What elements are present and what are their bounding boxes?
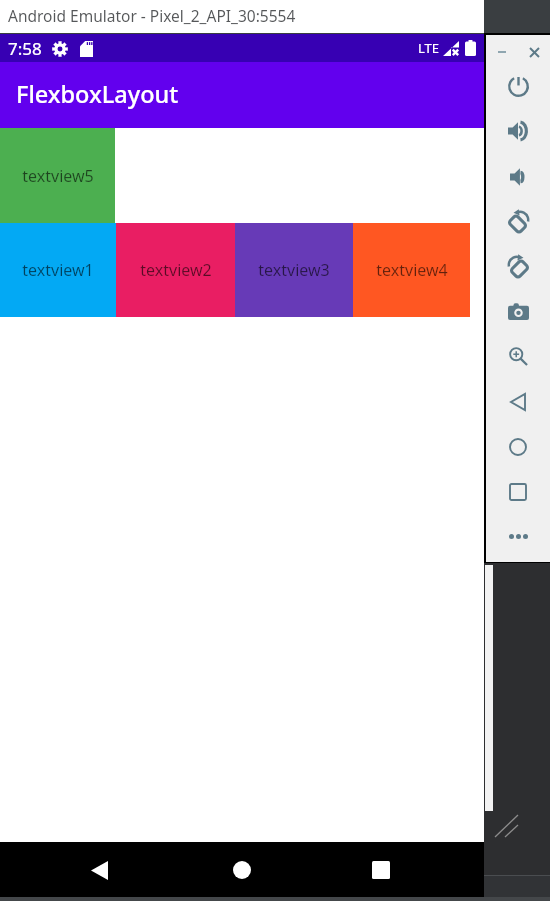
button[interactable]: Minimize [486, 36, 518, 68]
staticText: textview1 [22, 259, 94, 281]
staticText: 7:58 [8, 37, 42, 60]
button[interactable]: More [486, 514, 550, 558]
button[interactable]: Recents [361, 850, 401, 890]
button[interactable]: Close [518, 36, 550, 68]
button[interactable]: Take screenshot [486, 289, 550, 333]
staticText: textview3 [258, 259, 330, 281]
staticText: textview5 [22, 165, 94, 187]
button[interactable]: Rotate left [486, 200, 550, 244]
staticText: Android Emulator - Pixel_2_API_30:5554 [8, 5, 296, 26]
button[interactable]: textview3 [235, 223, 353, 317]
staticText: textview4 [376, 259, 448, 281]
button[interactable]: Volume up [486, 109, 550, 153]
button[interactable]: Volume down [486, 155, 550, 199]
button[interactable]: Rotate right [486, 245, 550, 289]
button[interactable]: Overview [486, 470, 550, 514]
button[interactable]: textview1 [0, 223, 116, 317]
button[interactable]: Home [222, 850, 262, 890]
button[interactable]: Home [486, 425, 550, 469]
button[interactable]: Back [486, 380, 550, 424]
button[interactable]: Zoom [486, 334, 550, 378]
button[interactable]: textview5 [0, 128, 115, 223]
button[interactable]: Back [79, 850, 119, 890]
button[interactable]: textview4 [353, 223, 470, 317]
button[interactable]: Power [486, 64, 550, 108]
staticText: textview2 [140, 259, 212, 281]
staticText: LTE [418, 39, 440, 57]
staticText: FlexboxLayout [16, 78, 179, 110]
button[interactable]: textview2 [116, 223, 235, 317]
